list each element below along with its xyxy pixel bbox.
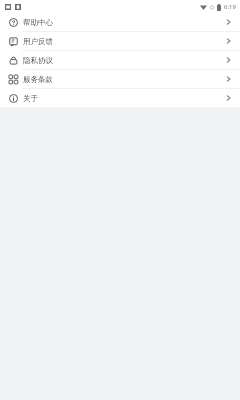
other: Terms of service	[9, 75, 18, 84]
staticText: 服务条款	[23, 75, 53, 84]
staticText: 6:19	[224, 3, 236, 11]
staticText: 关于	[23, 94, 38, 103]
other: Help center	[9, 18, 18, 27]
other: Privacy policy	[9, 56, 18, 65]
staticText: 用户反馈	[23, 37, 53, 46]
staticText: 帮助中心	[23, 18, 53, 27]
button[interactable]: User feedback	[0, 32, 240, 50]
button[interactable]: Help center	[0, 13, 240, 31]
other: About	[9, 94, 18, 103]
button[interactable]: About	[0, 89, 240, 107]
staticText: 隐私协议	[23, 56, 53, 65]
button[interactable]: Privacy policy	[0, 51, 240, 69]
other: User feedback	[9, 37, 18, 46]
button[interactable]: Terms of service	[0, 70, 240, 88]
